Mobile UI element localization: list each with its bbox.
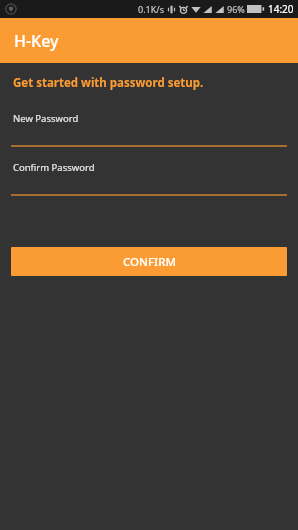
staticText: 0.1K/s xyxy=(138,3,164,15)
button[interactable]: CONFIRM xyxy=(11,247,287,276)
button[interactable]: New Password xyxy=(11,112,287,147)
staticText: Confirm Password xyxy=(13,161,95,174)
staticText: 14:20 xyxy=(268,2,294,16)
staticText: H-Key xyxy=(14,30,59,52)
button[interactable]: Confirm Password xyxy=(11,161,287,196)
other: Security xyxy=(5,3,17,15)
staticText: CONFIRM xyxy=(123,254,176,270)
staticText: 96% xyxy=(227,3,245,15)
staticText: New Password xyxy=(13,112,79,125)
staticText: Get started with password setup. xyxy=(13,75,204,91)
